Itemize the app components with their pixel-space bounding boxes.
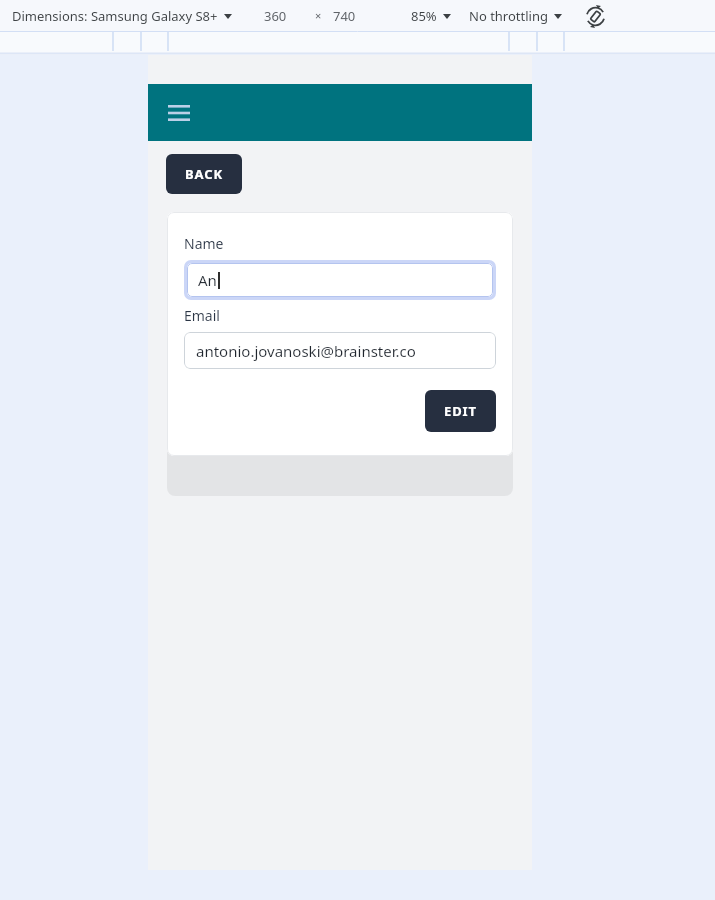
staticText: Dimensions: Samsung Galaxy S8+ [12,7,218,25]
staticText: An [198,270,217,290]
staticText: antonio.jovanoski@brainster.co [196,341,416,361]
button[interactable]: antonio.jovanoski@brainster.co [184,332,496,369]
button[interactable]: 740 [333,7,356,25]
button[interactable]: Dimensions: Samsung Galaxy S8+ [12,7,232,25]
staticText: EDIT [444,402,477,420]
staticText: No throttling [469,7,548,25]
button[interactable]: BACK [166,154,242,194]
button[interactable]: No throttling [469,7,562,25]
button[interactable]: An [187,263,493,297]
button[interactable]: Rotate device [582,3,608,29]
button[interactable]: 360 [264,7,287,25]
staticText: 85% [411,7,437,25]
staticText: BACK [185,165,223,183]
staticText: Name [184,234,224,253]
staticText: Email [184,306,220,325]
button[interactable]: 85% [411,7,451,25]
staticText: × [315,8,322,23]
button[interactable]: Menu [157,91,201,135]
button[interactable]: EDIT [425,390,496,432]
